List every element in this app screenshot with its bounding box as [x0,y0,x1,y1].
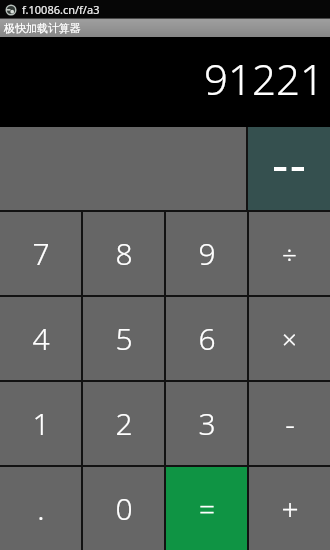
staticText: 5 [115,318,133,359]
staticText: 0 [115,488,133,529]
button[interactable]: Backspace [248,127,330,210]
staticText: ÷ [282,236,297,271]
button[interactable]: ÷ [249,212,330,295]
button[interactable]: 1 [0,382,81,465]
staticText: 4 [32,318,50,359]
staticText: 7 [32,233,50,274]
staticText: 1 [32,403,50,444]
staticText: 9 [198,233,216,274]
button[interactable]: 4 [0,297,81,380]
staticText: - [285,403,295,444]
button[interactable]: 0 [83,467,164,550]
staticText: f.10086.cn/f/a3 [22,2,100,17]
staticText: + [281,488,299,529]
button[interactable]: . [0,467,81,550]
button[interactable]: 6 [166,297,247,380]
button[interactable]: 2 [83,382,164,465]
staticText: 91221 [204,50,324,107]
staticText: 6 [198,318,216,359]
button[interactable]: 3 [166,382,247,465]
button[interactable]: Page info [0,0,330,18]
button[interactable]: = [166,467,247,550]
staticText: 2 [115,403,133,444]
other: Page info [5,4,17,16]
button[interactable]: 9 [166,212,247,295]
button[interactable]: 8 [83,212,164,295]
button[interactable]: - [249,382,330,465]
button[interactable]: × [249,297,330,380]
button[interactable]: + [249,467,330,550]
staticText: 极快加载计算器 [4,21,81,35]
staticText: 8 [115,233,133,274]
button[interactable]: 7 [0,212,81,295]
staticText: = [199,490,215,528]
button[interactable]: 5 [83,297,164,380]
staticText: 3 [198,403,216,444]
staticText: . [37,488,45,529]
staticText: × [282,321,297,356]
